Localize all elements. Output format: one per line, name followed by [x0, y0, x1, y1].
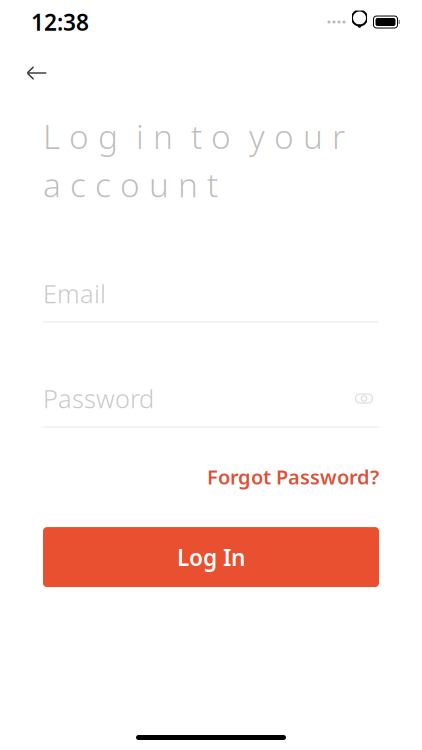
- button[interactable]: Back: [15, 56, 59, 90]
- staticText: Password: [43, 382, 154, 415]
- staticText: Forgot Password?: [207, 463, 379, 490]
- button[interactable]: Show password: [349, 385, 379, 411]
- staticText: Log In: [177, 542, 245, 572]
- staticText: a c c o u n t: [43, 162, 218, 207]
- button[interactable]: Forgot Password?: [207, 457, 379, 496]
- staticText: L o g i n t o y o u r: [43, 114, 345, 158]
- staticText: Email: [43, 277, 106, 310]
- button[interactable]: Log In: [43, 527, 379, 587]
- staticText: 12:38: [31, 7, 89, 37]
